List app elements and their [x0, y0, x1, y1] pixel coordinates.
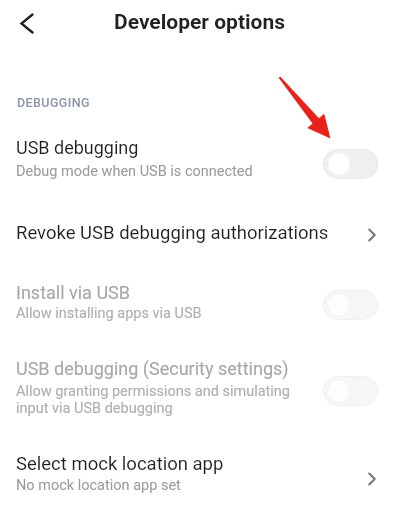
staticText: Debug mode when USB is connected — [16, 163, 253, 180]
staticText: Install via USB — [16, 282, 130, 303]
button[interactable]: USB debugging (Security settings) — [0, 356, 399, 418]
staticText: Allow installing apps via USB — [16, 305, 202, 322]
staticText: USB debugging — [16, 137, 139, 158]
staticText: No mock location app set — [16, 477, 181, 494]
button[interactable] — [323, 376, 378, 406]
button[interactable]: Revoke USB debugging authorizations — [0, 211, 399, 255]
button[interactable]: Select mock location app — [0, 445, 399, 501]
staticText: DEBUGGING — [17, 95, 90, 110]
staticText: USB debugging (Security settings) — [16, 358, 289, 379]
button[interactable]: Install via USB — [0, 276, 399, 328]
staticText: Developer options — [114, 10, 286, 35]
staticText: Select mock location app — [16, 453, 224, 475]
button[interactable] — [323, 290, 378, 320]
button[interactable]: USB debugging — [0, 129, 399, 187]
button[interactable] — [323, 149, 378, 179]
staticText: Revoke USB debugging authorizations — [16, 222, 368, 244]
button[interactable] — [12, 8, 42, 38]
staticText: Allow granting permissions and simulatin… — [16, 383, 291, 417]
